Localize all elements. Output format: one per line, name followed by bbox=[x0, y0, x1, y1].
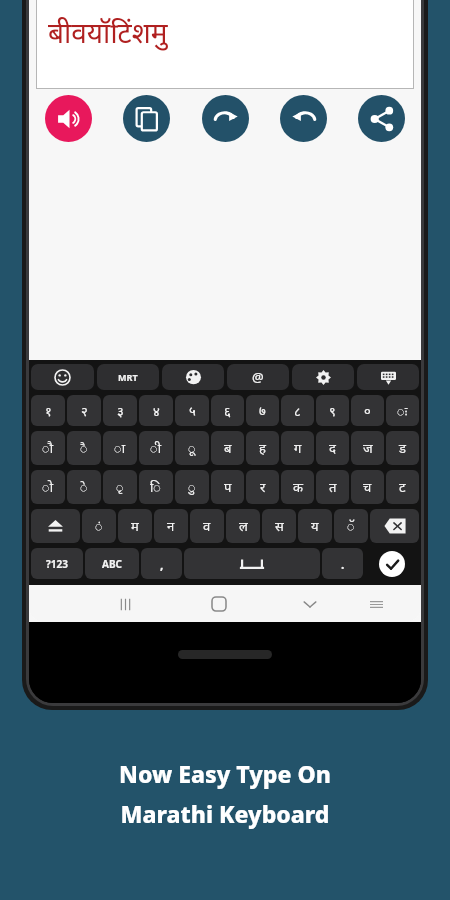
button[interactable]: Backspace bbox=[370, 509, 419, 543]
button[interactable]: Copy bbox=[123, 95, 170, 142]
button[interactable]: ABC bbox=[85, 548, 139, 579]
staticText: ८ bbox=[294, 402, 301, 420]
staticText: ल bbox=[239, 517, 248, 535]
button[interactable]: Theme bbox=[162, 364, 224, 390]
button[interactable]: ५ bbox=[175, 395, 209, 426]
button[interactable]: Language bbox=[97, 364, 159, 390]
staticText: ७ bbox=[259, 402, 266, 420]
button[interactable]: स bbox=[262, 509, 296, 543]
button[interactable]: ॅ bbox=[334, 509, 368, 543]
staticText: ९ bbox=[329, 402, 336, 420]
staticText: १ bbox=[45, 402, 52, 420]
button[interactable]: ड bbox=[386, 431, 419, 465]
staticText: ABC bbox=[102, 557, 122, 571]
staticText: Now Easy Type On bbox=[119, 758, 331, 789]
button[interactable]: Undo bbox=[280, 95, 327, 142]
button[interactable]: ौ bbox=[31, 431, 65, 465]
staticText: . bbox=[341, 556, 345, 572]
staticText: म bbox=[131, 517, 139, 535]
button[interactable]: व bbox=[190, 509, 224, 543]
staticText: ४ bbox=[153, 402, 160, 420]
button[interactable]: य bbox=[298, 509, 332, 543]
button[interactable]: Period bbox=[322, 548, 363, 579]
staticText: प bbox=[224, 478, 232, 496]
button[interactable]: ० bbox=[351, 395, 384, 426]
button[interactable]: Symbols bbox=[31, 548, 83, 579]
button[interactable]: At sign bbox=[227, 364, 289, 390]
button[interactable]: ू bbox=[175, 431, 209, 465]
button[interactable]: क bbox=[281, 470, 314, 504]
button[interactable]: Redo bbox=[202, 95, 249, 142]
button[interactable]: ८ bbox=[281, 395, 314, 426]
button[interactable]: त bbox=[316, 470, 349, 504]
button[interactable]: र bbox=[246, 470, 279, 504]
staticText: ५ bbox=[189, 402, 196, 420]
staticText: ज bbox=[363, 439, 373, 457]
button[interactable]: ९ bbox=[316, 395, 349, 426]
button[interactable]: ा bbox=[103, 431, 137, 465]
button[interactable]: द bbox=[316, 431, 349, 465]
button[interactable]: Comma bbox=[141, 548, 182, 579]
button[interactable]: ज bbox=[351, 431, 384, 465]
button[interactable]: Back bbox=[298, 592, 322, 616]
button[interactable]: ग bbox=[281, 431, 314, 465]
button[interactable]: Home bbox=[207, 592, 231, 616]
staticText: े bbox=[80, 478, 88, 496]
button[interactable]: ी bbox=[139, 431, 173, 465]
staticText: ि bbox=[150, 478, 162, 496]
staticText: ह bbox=[259, 439, 266, 457]
staticText: ६ bbox=[224, 402, 231, 420]
button[interactable]: ह bbox=[246, 431, 279, 465]
button[interactable]: Space bbox=[184, 548, 320, 579]
staticText: ू bbox=[188, 439, 196, 457]
button[interactable]: ै bbox=[67, 431, 101, 465]
button[interactable]: े bbox=[67, 470, 101, 504]
button[interactable]: ि bbox=[139, 470, 173, 504]
button[interactable]: Speak bbox=[45, 95, 92, 142]
staticText: ा bbox=[114, 439, 126, 457]
button[interactable]: २ bbox=[67, 395, 101, 426]
staticText: ृ bbox=[116, 478, 124, 496]
button[interactable]: Share bbox=[358, 95, 405, 142]
button[interactable]: Recents bbox=[113, 592, 137, 616]
staticText: बीवयॉटिंशमु bbox=[48, 13, 168, 51]
staticText: ी bbox=[150, 439, 162, 457]
staticText: , bbox=[160, 556, 164, 572]
button[interactable]: Enter bbox=[365, 548, 419, 579]
button[interactable]: ४ bbox=[139, 395, 173, 426]
button[interactable]: प bbox=[211, 470, 244, 504]
staticText: ु bbox=[188, 478, 196, 496]
button[interactable]: ब bbox=[211, 431, 244, 465]
staticText: २ bbox=[81, 402, 88, 420]
staticText: ?123 bbox=[46, 557, 68, 571]
button[interactable]: ु bbox=[175, 470, 209, 504]
button[interactable]: ट bbox=[386, 470, 419, 504]
staticText: MRT bbox=[118, 371, 138, 383]
button[interactable]: ३ bbox=[103, 395, 137, 426]
button[interactable]: ो bbox=[31, 470, 65, 504]
button[interactable]: ः bbox=[386, 395, 419, 426]
staticText: न bbox=[167, 517, 175, 535]
staticText: ः bbox=[397, 402, 408, 420]
button[interactable]: Emoji bbox=[31, 364, 94, 390]
button[interactable]: च bbox=[351, 470, 384, 504]
staticText: ट bbox=[399, 478, 406, 496]
button[interactable]: १ bbox=[31, 395, 65, 426]
button[interactable]: न bbox=[154, 509, 188, 543]
staticText: ं bbox=[95, 517, 103, 535]
staticText: च bbox=[363, 478, 372, 496]
button[interactable]: ृ bbox=[103, 470, 137, 504]
button[interactable]: ७ bbox=[246, 395, 279, 426]
button[interactable]: ६ bbox=[211, 395, 244, 426]
button[interactable]: Settings bbox=[292, 364, 354, 390]
button[interactable]: म bbox=[118, 509, 152, 543]
staticText: ॅ bbox=[347, 517, 355, 535]
staticText: त bbox=[329, 478, 337, 496]
button[interactable]: Shift bbox=[31, 509, 80, 543]
staticText: ड bbox=[399, 439, 406, 457]
button[interactable]: Hide keyboard bbox=[357, 364, 419, 390]
button[interactable]: ल bbox=[226, 509, 260, 543]
staticText: ब bbox=[224, 439, 232, 457]
button[interactable]: ं bbox=[82, 509, 116, 543]
button[interactable]: Switch keyboard bbox=[364, 592, 388, 616]
